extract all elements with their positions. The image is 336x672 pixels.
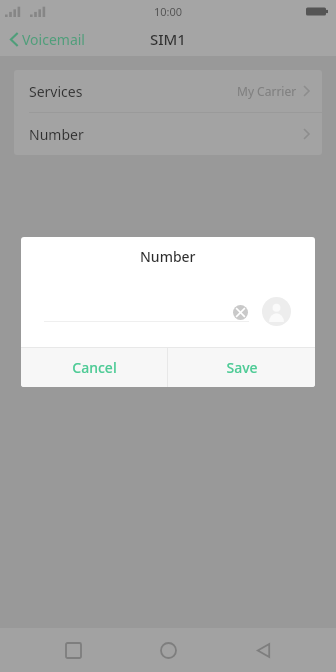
- button[interactable]: Number: [14, 113, 322, 155]
- staticText: My Carrier: [237, 83, 297, 99]
- staticText: 10:00: [154, 4, 183, 19]
- staticText: Number: [29, 125, 84, 144]
- staticText: Services: [29, 82, 83, 101]
- button[interactable]: Cancel: [21, 348, 167, 387]
- staticText: Number: [140, 247, 196, 266]
- button[interactable]: Choose contact: [262, 297, 291, 326]
- button[interactable]: Voicemail: [0, 22, 95, 56]
- staticText: Cancel: [72, 358, 117, 377]
- button[interactable]: Recents: [51, 628, 95, 672]
- button[interactable]: Home: [146, 628, 190, 672]
- button[interactable]: Back: [241, 628, 285, 672]
- staticText: Save: [226, 358, 258, 377]
- button[interactable]: Services: [14, 70, 322, 112]
- staticText: Voicemail: [22, 30, 85, 49]
- staticText: SIM1: [150, 29, 186, 49]
- button[interactable]: Clear: [229, 301, 251, 323]
- button[interactable]: Save: [168, 348, 315, 387]
